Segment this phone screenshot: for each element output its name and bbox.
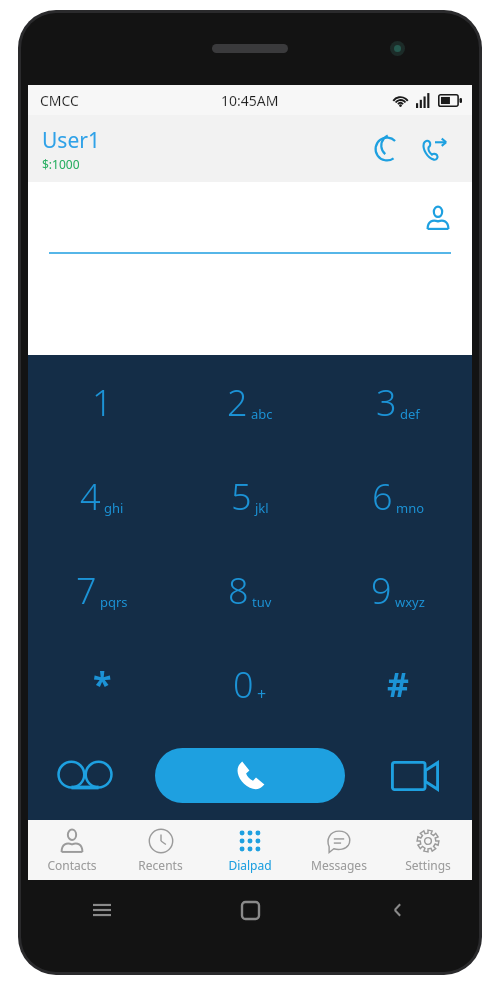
button[interactable]: 3 bbox=[324, 355, 472, 449]
staticText: 10:45AM bbox=[221, 91, 279, 110]
button[interactable]: Call forwarding bbox=[414, 128, 456, 170]
staticText: Dialpad bbox=[228, 857, 272, 873]
staticText: 3 bbox=[376, 378, 397, 427]
staticText: 6 bbox=[372, 472, 393, 521]
button[interactable]: 9 bbox=[324, 543, 472, 637]
staticText: # bbox=[387, 661, 409, 707]
button[interactable]: Recents bbox=[116, 820, 205, 880]
button[interactable]: # bbox=[324, 637, 472, 731]
button[interactable]: Voicemail bbox=[28, 731, 142, 820]
staticText: Messages bbox=[311, 857, 367, 873]
staticText: 1 bbox=[92, 378, 113, 427]
staticText: jkl bbox=[255, 499, 269, 517]
staticText: + bbox=[257, 683, 267, 705]
staticText: pqrs bbox=[100, 593, 128, 611]
staticText: 9 bbox=[371, 566, 392, 615]
staticText: 0 bbox=[233, 660, 254, 709]
button[interactable]: Settings bbox=[383, 820, 472, 880]
button[interactable]: 2 bbox=[176, 355, 324, 449]
button[interactable]: 6 bbox=[324, 449, 472, 543]
staticText: Contacts bbox=[47, 857, 97, 873]
button[interactable]: 1 bbox=[28, 355, 176, 449]
button[interactable]: Back bbox=[324, 880, 472, 940]
button[interactable]: * bbox=[28, 637, 176, 731]
button[interactable]: Messages bbox=[294, 820, 383, 880]
button[interactable]: Call bbox=[155, 748, 345, 803]
button[interactable]: 8 bbox=[176, 543, 324, 637]
button[interactable]: Video call bbox=[358, 731, 472, 820]
staticText: mno bbox=[396, 499, 425, 517]
staticText: def bbox=[400, 405, 420, 423]
button[interactable]: 4 bbox=[28, 449, 176, 543]
staticText: ghi bbox=[104, 499, 124, 517]
staticText: 5 bbox=[231, 472, 252, 521]
staticText: 8 bbox=[228, 566, 249, 615]
button[interactable]: Menu bbox=[28, 880, 176, 940]
button[interactable]: Dialpad bbox=[205, 820, 294, 880]
staticText: wxyz bbox=[395, 593, 425, 611]
button[interactable]: 7 bbox=[28, 543, 176, 637]
staticText: tuv bbox=[252, 593, 272, 611]
staticText: Recents bbox=[138, 857, 183, 873]
staticText: abc bbox=[251, 405, 273, 423]
button[interactable]: Add contact bbox=[418, 198, 458, 238]
button[interactable]: 5 bbox=[176, 449, 324, 543]
staticText: User1 bbox=[42, 126, 100, 155]
staticText: * bbox=[93, 661, 112, 707]
staticText: Settings bbox=[405, 857, 451, 873]
staticText: 7 bbox=[76, 566, 97, 615]
button[interactable]: Do not disturb bbox=[366, 128, 408, 170]
button[interactable]: Contacts bbox=[28, 820, 116, 880]
staticText: $:1000 bbox=[42, 156, 80, 172]
staticText: CMCC bbox=[40, 91, 79, 110]
staticText: 4 bbox=[80, 472, 101, 521]
button[interactable]: Home bbox=[176, 880, 324, 940]
button[interactable]: 0 bbox=[176, 637, 324, 731]
staticText: 2 bbox=[227, 378, 248, 427]
